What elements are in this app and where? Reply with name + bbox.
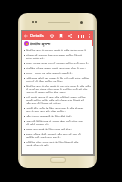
staticText: स्वस्थ जीवन शैली अपनाएँ और खुश रहें सदा …: [26, 132, 81, 135]
staticText: अवश्य ही करना चाहिए रोज़ सुबह।: [26, 90, 67, 93]
staticText: स्वास्थ्य सूचना: [30, 41, 51, 46]
staticText: योजनाओं अनुसार देखभाल करना चाहिए जिससे स…: [26, 53, 91, 56]
staticText: समय - समय पर जाँच करवाएँ जरूरी है।: [26, 71, 73, 74]
staticText: बहुत अच्छा रहे।: [26, 56, 45, 59]
staticText: सुबह उठकर ताज़ा हवा में टहलना चाहिए तभी …: [26, 61, 89, 64]
staticText: नियमित रूप से योग करने से मन शांत रहता ह…: [26, 84, 91, 87]
button[interactable]: Text size: [78, 33, 84, 39]
button[interactable]: Favorite: [49, 33, 55, 39]
staticText: Details: [30, 33, 44, 39]
button[interactable]: Share: [67, 33, 73, 39]
button[interactable]: Back: [23, 33, 29, 39]
staticText: क्योंकि यही सबसे बड़ा धन है।: [26, 135, 61, 138]
button[interactable]: More options: [86, 33, 92, 39]
staticText: कम से कम आठ घंटे सोना चाहिए।: [26, 109, 66, 112]
staticText: तनाव कम करने के लिए ध्यान करें रोज़।: [26, 127, 72, 130]
staticText: करनी चाहिए ताकि शरीर को पोषक तत्व मिलते …: [26, 98, 84, 101]
staticText: में ऊर्जा का संचार होता रहता है इसलिए सभ…: [26, 87, 88, 90]
button[interactable]: Home: [50, 157, 66, 163]
staticText: और बल भी मिलता रहे हमेशा।: [26, 101, 62, 104]
staticText: मात्रा में ही पीना चाहिए हर दिन।: [26, 79, 63, 82]
staticText: हमें अपने आहार में फल और सब्ज़ियाँ ज़रूर…: [26, 95, 86, 98]
button[interactable]: स्वास्थ्य सूचना: [24, 40, 93, 47]
staticText: और ज़्यादा जानकारी के लिए नीचे देखें।: [26, 114, 72, 117]
staticText: संतुलित भोजन करना सबसे आवश्यक होता है सद…: [26, 66, 86, 69]
staticText: भी कोई समस्या हो।: [26, 122, 49, 125]
staticText: अधिकतर लोगों का मानना है कि हमें पानी बह…: [26, 76, 90, 79]
staticText: अपने शौक पूरे करें।: [26, 143, 49, 146]
staticText: अनुभवी चिकित्सक से सलाह लेना सही रहेगा ज…: [26, 119, 83, 122]
staticText: अच्छी नींद शरीर के लिए आवश्यक है और रोज़…: [26, 106, 84, 109]
staticText: नियमित रूप से व्यायाम करने से शरीर स्वस्…: [26, 48, 91, 51]
staticText: प्रतिदिन थोड़ा समय स्वयं के लिए निकालें …: [26, 140, 79, 143]
button[interactable]: Bookmark: [58, 33, 64, 39]
